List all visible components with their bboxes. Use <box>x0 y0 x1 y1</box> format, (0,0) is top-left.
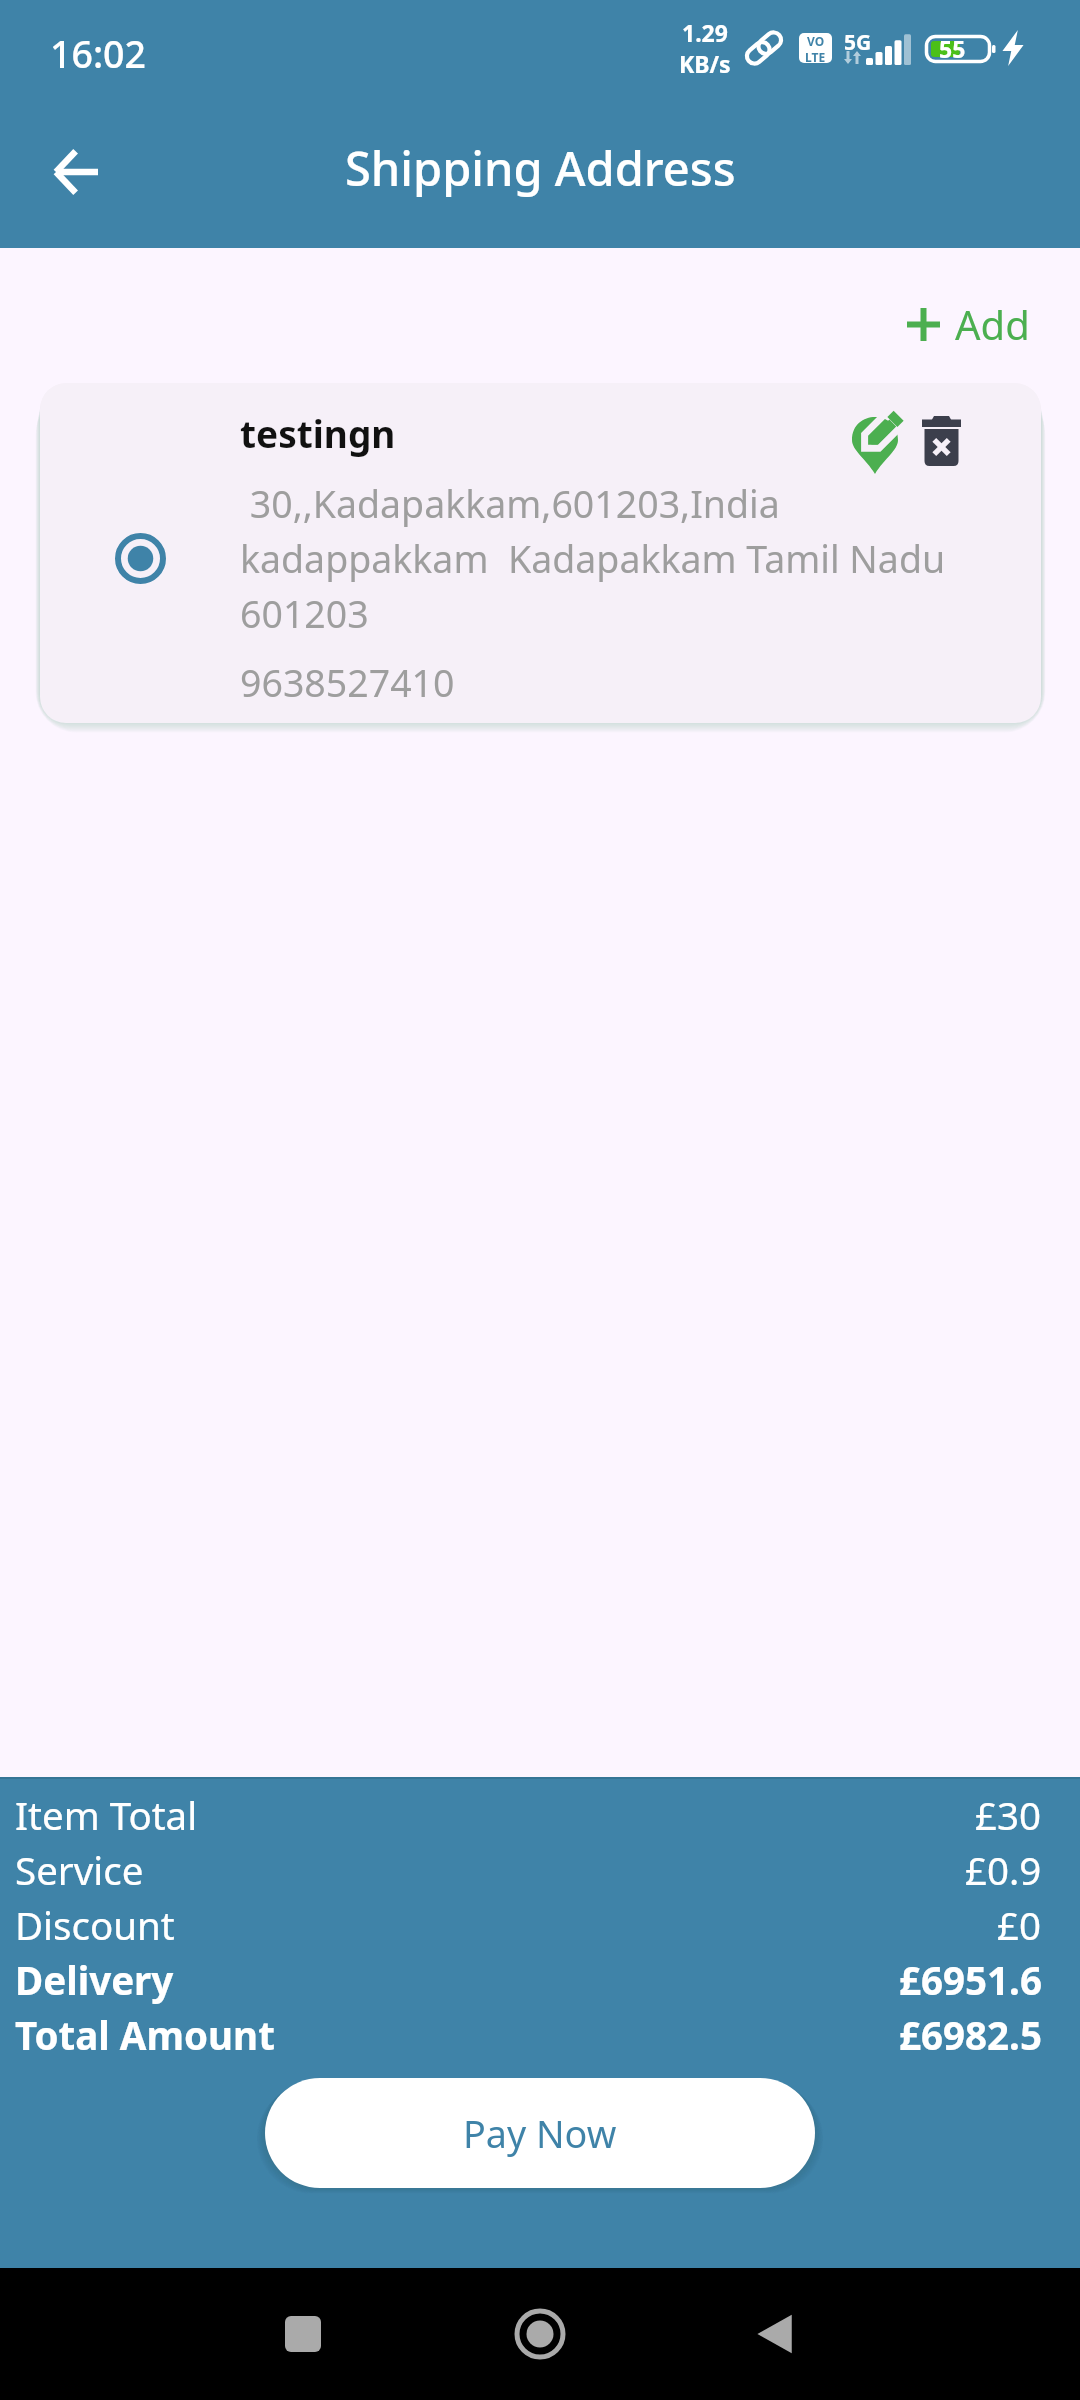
button[interactable]: Back <box>735 2294 815 2374</box>
button[interactable]: Home <box>500 2294 580 2374</box>
staticText: £30 <box>975 1789 1042 1841</box>
staticText: 5G <box>844 28 872 57</box>
staticText: Discount <box>15 1899 175 1951</box>
staticText: £0 <box>997 1899 1042 1951</box>
button[interactable]: Add <box>906 297 1030 351</box>
button[interactable]: Back <box>42 137 112 207</box>
staticText: 30,,Kadapakkam,601203,India kadappakkam … <box>240 478 1001 639</box>
staticText: 16:02 <box>50 28 146 79</box>
staticText: £6951.6 <box>899 1954 1042 2006</box>
button[interactable]: testingn <box>40 383 1041 723</box>
staticText: VO <box>807 33 825 49</box>
staticText: 55 <box>939 33 966 64</box>
button[interactable]: Recents <box>263 2294 343 2374</box>
staticText: Item Total <box>15 1789 198 1841</box>
staticText: KB/s <box>679 48 731 79</box>
staticText: Total Amount <box>15 2009 275 2061</box>
staticText: £0.9 <box>965 1844 1042 1896</box>
staticText: 9638527410 <box>240 657 455 708</box>
button[interactable]: Pay Now <box>265 2078 815 2188</box>
staticText: testingn <box>240 408 396 458</box>
button[interactable]: Delete address <box>909 409 975 475</box>
staticText: Shipping Address <box>345 136 736 200</box>
staticText: Delivery <box>15 1954 174 2006</box>
staticText: £6982.5 <box>899 2009 1042 2061</box>
staticText: Add <box>955 297 1030 351</box>
staticText: 1.29 <box>682 17 728 48</box>
staticText: Pay Now <box>463 2108 617 2159</box>
button[interactable]: Edit address <box>847 407 917 477</box>
staticText: Service <box>15 1844 144 1896</box>
staticText: LTE <box>805 49 826 63</box>
